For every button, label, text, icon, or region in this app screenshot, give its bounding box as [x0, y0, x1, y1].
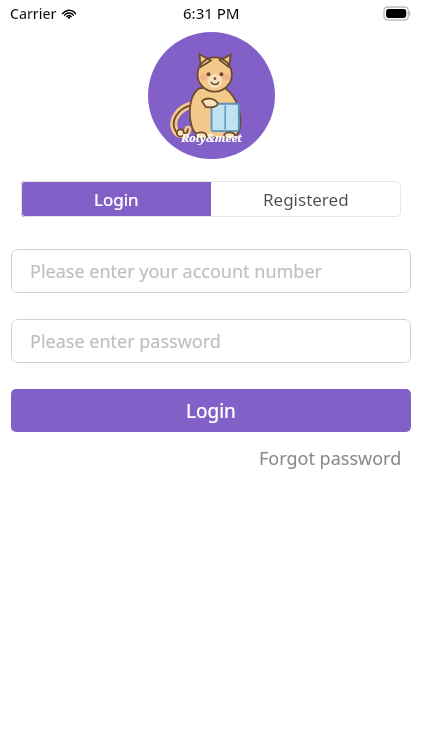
- button[interactable]: Login: [11, 389, 411, 432]
- button[interactable]: Forgot password: [257, 442, 404, 475]
- staticText: Forgot password: [259, 446, 402, 471]
- staticText: Registered: [263, 188, 349, 211]
- button[interactable]: Registered: [211, 181, 401, 217]
- button[interactable]: Please enter your account number: [11, 249, 411, 293]
- staticText: Please enter your account number: [30, 259, 323, 284]
- staticText: 6:31 PM: [183, 3, 240, 23]
- staticText: Login: [94, 188, 139, 211]
- staticText: Roly&meet: [181, 130, 242, 145]
- staticText: Please enter password: [30, 329, 221, 354]
- staticText: Carrier: [10, 4, 57, 23]
- button[interactable]: Please enter password: [11, 319, 411, 363]
- staticText: Login: [186, 398, 236, 424]
- button[interactable]: Login: [21, 181, 211, 217]
